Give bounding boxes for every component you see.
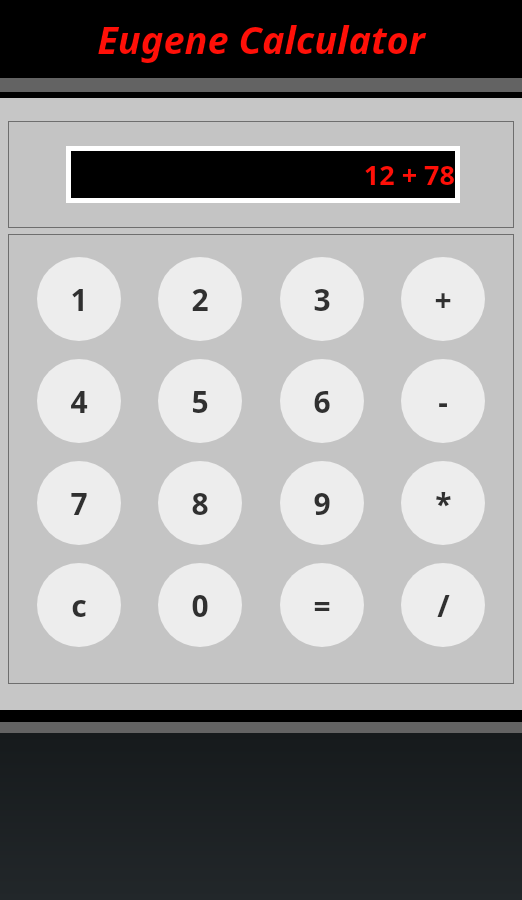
staticText: c (71, 585, 87, 626)
staticText: 2 (191, 279, 209, 320)
button[interactable]: c (37, 563, 121, 647)
staticText: + (434, 279, 452, 320)
staticText: 1 (70, 279, 88, 320)
button[interactable]: + (401, 257, 485, 341)
button[interactable]: * (401, 461, 485, 545)
staticText: 0 (191, 585, 209, 626)
button[interactable]: / (401, 563, 485, 647)
staticText: 5 (191, 381, 209, 422)
button[interactable]: - (401, 359, 485, 443)
button[interactable]: 7 (37, 461, 121, 545)
button[interactable]: 6 (280, 359, 364, 443)
staticText: 8 (191, 483, 209, 524)
staticText: 4 (70, 381, 88, 422)
button[interactable]: 2 (158, 257, 242, 341)
button[interactable]: 9 (280, 461, 364, 545)
staticText: 7 (70, 483, 88, 524)
staticText: - (438, 381, 448, 422)
staticText: 3 (313, 279, 331, 320)
staticText: = (313, 585, 331, 626)
staticText: / (437, 585, 450, 626)
button[interactable]: 0 (158, 563, 242, 647)
button[interactable]: = (280, 563, 364, 647)
staticText: Eugene Calculator (97, 13, 425, 65)
button[interactable]: 5 (158, 359, 242, 443)
button[interactable]: 8 (158, 461, 242, 545)
staticText: 12 + 78 (363, 156, 455, 193)
button[interactable]: 3 (280, 257, 364, 341)
staticText: * (435, 483, 452, 524)
staticText: 9 (313, 483, 331, 524)
button[interactable]: 12 + 78 (71, 151, 455, 198)
staticText: 6 (313, 381, 331, 422)
button[interactable]: 4 (37, 359, 121, 443)
button[interactable]: 1 (37, 257, 121, 341)
